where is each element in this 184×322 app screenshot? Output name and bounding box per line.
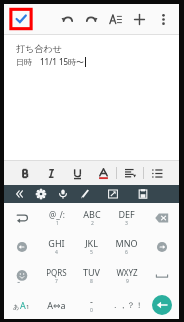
other: Input mode <box>4 290 39 319</box>
button[interactable]: Clipboard <box>132 185 154 203</box>
button[interactable]: ．，？！ <box>109 290 144 319</box>
button[interactable]: Cursor right <box>144 232 179 261</box>
staticText: 7 <box>55 278 58 285</box>
button[interactable]: Handwriting <box>74 185 96 203</box>
button[interactable]: Text style <box>103 7 127 31</box>
button[interactable]: Redo <box>79 7 103 31</box>
staticText: PQRS <box>46 267 67 278</box>
staticText: 日時 11/1 15時〜 <box>16 56 85 67</box>
other: Enter <box>144 290 179 319</box>
staticText: 9 <box>126 278 129 285</box>
button[interactable]: More options <box>151 7 175 31</box>
staticText: 8 <box>90 278 93 285</box>
other: Backspace <box>144 203 179 232</box>
button[interactable]: PQRS <box>39 261 74 290</box>
staticText: GHI <box>48 237 65 249</box>
staticText: 2 <box>91 220 94 227</box>
staticText: 5 <box>90 249 93 256</box>
button[interactable]: DEF <box>109 203 144 232</box>
button[interactable]: @_/: <box>39 203 74 232</box>
button[interactable]: Undo <box>55 7 79 31</box>
button[interactable]: List <box>144 161 170 185</box>
button[interactable]: Text color <box>90 161 116 185</box>
button[interactable]: MNO <box>109 232 144 261</box>
button[interactable]: ABC <box>74 203 109 232</box>
button[interactable]: Resize <box>102 185 124 203</box>
staticText: 打ち合わせ <box>16 43 62 54</box>
staticText: JKL <box>85 237 98 249</box>
other: Cursor left <box>4 232 39 261</box>
button[interactable]: Done <box>10 8 32 30</box>
staticText: - <box>90 295 93 307</box>
button[interactable]: TUV <box>74 261 109 290</box>
button[interactable]: Italic <box>38 161 64 185</box>
button[interactable]: Voice input <box>52 185 74 203</box>
other: Undo <box>4 203 39 232</box>
button[interactable]: Backspace <box>144 203 179 232</box>
staticText: 4 <box>55 249 58 256</box>
button[interactable]: A⇔a <box>39 290 74 319</box>
other: Emoji <box>4 261 39 290</box>
button[interactable]: Space <box>144 261 179 290</box>
staticText: 0 <box>90 307 93 314</box>
staticText: A <box>20 299 26 311</box>
staticText: DEF <box>118 208 135 220</box>
button[interactable]: Align <box>117 161 143 185</box>
staticText: MNO <box>115 237 138 249</box>
button[interactable]: - <box>74 290 109 319</box>
button[interactable]: Enter <box>144 290 179 319</box>
staticText: 3 <box>125 220 128 227</box>
other: Cursor right <box>144 232 179 261</box>
button[interactable]: Underline <box>64 161 90 185</box>
button[interactable]: Input mode <box>4 290 39 319</box>
staticText: ABC <box>83 208 101 220</box>
button[interactable]: Cursor left <box>4 232 39 261</box>
button[interactable]: Settings <box>30 185 52 203</box>
other: Space <box>144 261 179 290</box>
button[interactable]: GHI <box>39 232 74 261</box>
button[interactable]: Undo <box>4 203 39 232</box>
staticText: A⇔a <box>47 299 66 311</box>
staticText: @_/: <box>49 209 65 220</box>
staticText: ．，？！ <box>111 300 143 310</box>
staticText: 1 <box>56 220 59 227</box>
staticText: 1 <box>26 303 30 311</box>
staticText: TUV <box>83 266 100 278</box>
button[interactable]: Add <box>127 7 151 31</box>
button[interactable]: Emoji <box>4 261 39 290</box>
button[interactable]: WXYZ <box>109 261 144 290</box>
button[interactable]: Collapse <box>8 185 30 203</box>
button[interactable]: JKL <box>74 232 109 261</box>
staticText: あ <box>13 303 20 311</box>
staticText: WXYZ <box>116 267 138 278</box>
staticText: 6 <box>125 249 128 256</box>
button[interactable]: Bold <box>12 161 38 185</box>
